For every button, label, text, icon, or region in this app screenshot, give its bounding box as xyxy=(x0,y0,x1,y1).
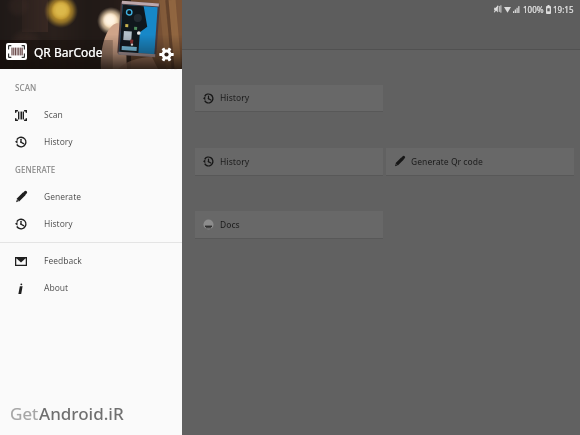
staticText: About xyxy=(44,282,69,294)
staticText: Android.iR xyxy=(39,402,124,425)
staticText: 100% xyxy=(523,4,544,15)
staticText: History xyxy=(220,92,250,104)
button[interactable]: About xyxy=(0,275,182,301)
button[interactable]: Settings xyxy=(159,47,174,62)
staticText: Feedback xyxy=(44,255,82,267)
button[interactable]: Feedback xyxy=(0,248,182,274)
staticText: History xyxy=(44,218,73,230)
button[interactable]: Generate xyxy=(0,184,182,210)
button[interactable]: Docs xyxy=(195,211,383,238)
staticText: 19:15 xyxy=(553,4,574,15)
staticText: QR BarCode xyxy=(34,44,103,60)
button[interactable]: History xyxy=(0,129,182,155)
staticText: Generate Qr code xyxy=(411,156,483,168)
button[interactable]: Generate Qr code xyxy=(386,148,574,175)
staticText: Scan xyxy=(44,109,63,121)
staticText: History xyxy=(220,156,250,168)
staticText: History xyxy=(44,136,73,148)
button[interactable]: History xyxy=(0,211,182,237)
staticText: SCAN xyxy=(15,82,37,93)
staticText: Docs xyxy=(220,219,240,231)
staticText: GENERATE xyxy=(15,164,56,175)
staticText: Get xyxy=(10,402,39,425)
staticText: Generate xyxy=(44,191,82,203)
button[interactable]: Scan xyxy=(0,102,182,128)
button[interactable]: History xyxy=(195,148,383,175)
button[interactable]: History xyxy=(195,85,383,111)
